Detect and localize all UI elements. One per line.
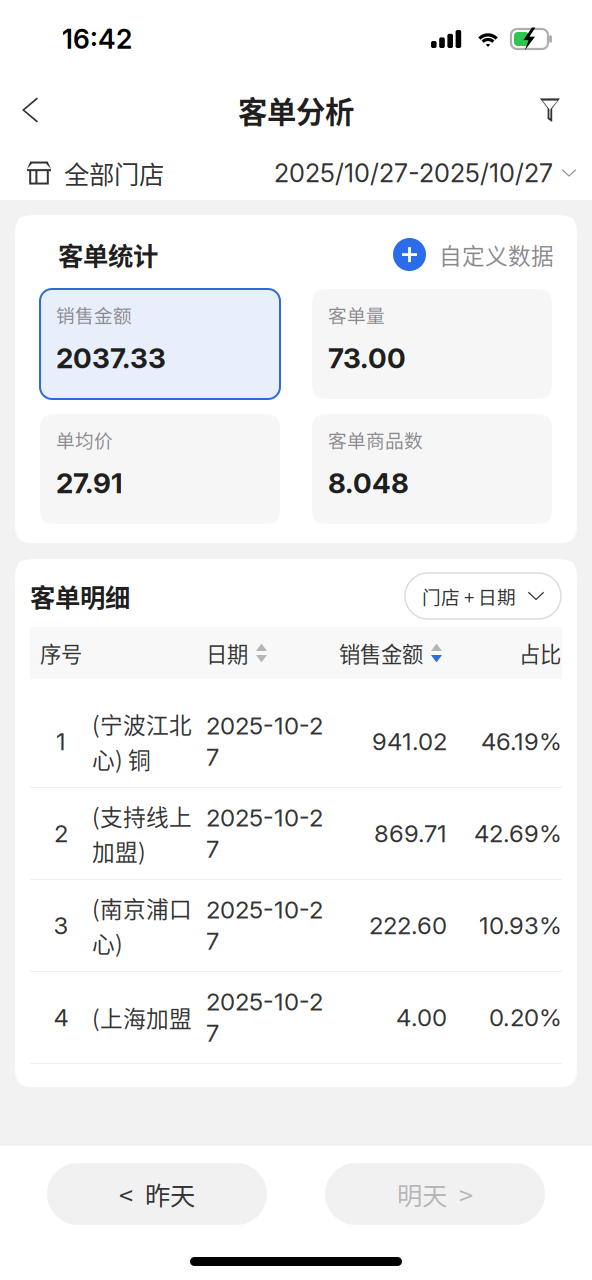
staticText: 2037.33 — [56, 341, 166, 375]
staticText: 42.69% — [474, 819, 562, 848]
staticText: 46.19% — [481, 727, 562, 756]
staticText: 全部门店 — [64, 155, 164, 191]
staticText: 门店 + 日期 — [422, 582, 516, 609]
staticText: 7 — [206, 1018, 219, 1047]
staticText: 2025-10-2 — [206, 803, 323, 832]
staticText: 2 — [54, 819, 68, 848]
staticText: 明天 > — [397, 1176, 473, 1212]
staticText: 心) — [92, 926, 123, 959]
button[interactable]: 明天 > — [325, 1163, 545, 1225]
staticText: 16:42 — [62, 23, 132, 55]
staticText: (上海加盟 — [92, 1001, 192, 1034]
staticText: 3 — [53, 911, 68, 940]
button[interactable]: Filter — [521, 79, 579, 141]
staticText: 1 — [56, 727, 66, 756]
button[interactable]: 日期 — [206, 627, 324, 679]
button[interactable]: 2 — [30, 788, 562, 880]
staticText: (支持线上 — [92, 800, 192, 832]
staticText: 自定义数据 — [439, 238, 554, 271]
button[interactable]: 销售金额 — [40, 289, 280, 399]
button[interactable]: 客单量 — [312, 289, 552, 399]
button[interactable]: 销售金额 — [324, 627, 447, 679]
button[interactable]: 单均价 — [40, 414, 280, 524]
staticText: (宁波江北 — [92, 708, 192, 740]
staticText: 客单明细 — [30, 578, 130, 614]
button[interactable]: 门店 + 日期 — [405, 573, 561, 619]
button[interactable]: 1 — [30, 696, 562, 788]
button[interactable]: 自定义数据 — [393, 238, 554, 271]
staticText: 销售金额 — [56, 301, 132, 328]
staticText: (南京浦口 — [92, 892, 192, 924]
staticText: 941.02 — [372, 727, 447, 756]
staticText: 2025-10-2 — [206, 711, 323, 740]
staticText: 客单统计 — [58, 236, 158, 273]
staticText: 2025-10-2 — [206, 987, 323, 1016]
staticText: 8.048 — [328, 466, 409, 500]
staticText: 27.91 — [56, 466, 123, 500]
button[interactable]: < 昨天 — [47, 1163, 267, 1225]
staticText: 222.60 — [369, 911, 447, 940]
button[interactable]: 客单商品数 — [312, 414, 552, 524]
staticText: 7 — [206, 742, 219, 771]
staticText: 客单分析 — [238, 89, 354, 131]
staticText: 客单商品数 — [328, 426, 423, 453]
staticText: 0.20% — [489, 1003, 562, 1032]
staticText: < 昨天 — [119, 1176, 195, 1212]
staticText: 4.00 — [396, 1003, 447, 1032]
button[interactable]: Back — [1, 79, 59, 141]
staticText: 序号 — [40, 638, 82, 668]
button[interactable]: 2025/10/27-2025/10/27 — [274, 146, 592, 200]
button[interactable]: 序号 — [30, 627, 92, 679]
button[interactable]: 全部门店 — [0, 146, 178, 200]
staticText: 73.00 — [328, 341, 406, 375]
button[interactable]: 4 — [30, 972, 562, 1064]
staticText: 日期 — [206, 638, 248, 668]
staticText: 心) 铜 — [92, 742, 151, 775]
staticText: 加盟) — [92, 834, 146, 867]
staticText: 7 — [206, 926, 219, 955]
staticText: 10.93% — [479, 911, 562, 940]
staticText: 销售金额 — [339, 638, 423, 668]
staticText: 占比 — [519, 638, 561, 668]
staticText: 7 — [206, 834, 219, 863]
staticText: 客单量 — [328, 301, 385, 328]
button[interactable]: 占比 — [447, 627, 562, 679]
staticText: 869.71 — [374, 819, 447, 848]
staticText: 2025/10/27-2025/10/27 — [274, 158, 553, 188]
staticText: 2025-10-2 — [206, 895, 323, 924]
staticText: 4 — [53, 1003, 68, 1032]
staticText: 单均价 — [56, 426, 113, 453]
button[interactable]: 3 — [30, 880, 562, 972]
